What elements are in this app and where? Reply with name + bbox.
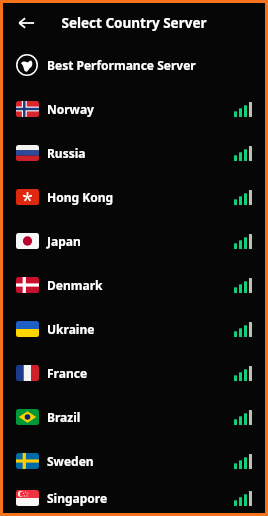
staticText: Denmark [47,277,103,293]
staticText: Ukraine [47,321,95,337]
button[interactable]: Russia [3,131,265,175]
button[interactable]: Back [11,8,41,38]
staticText: Hong Kong [47,189,114,205]
staticText: Sweden [47,453,94,469]
button[interactable]: Norway [3,87,265,131]
staticText: Select Country Server [61,14,207,32]
button[interactable]: Sweden [3,439,265,483]
button[interactable]: Ukraine [3,307,265,351]
staticText: Russia [47,145,86,161]
staticText: Norway [47,101,94,117]
staticText: Best Performance Server [47,57,196,73]
staticText: Brazil [47,409,81,425]
button[interactable]: Brazil [3,395,265,439]
staticText: France [47,365,88,381]
button[interactable]: Japan [3,219,265,263]
staticText: Japan [47,233,81,249]
button[interactable]: Best Performance Server [3,43,265,87]
staticText: Singapore [47,490,108,506]
button[interactable]: Singapore [3,483,265,513]
button[interactable]: Hong Kong [3,175,265,219]
button[interactable]: Denmark [3,263,265,307]
button[interactable]: France [3,351,265,395]
